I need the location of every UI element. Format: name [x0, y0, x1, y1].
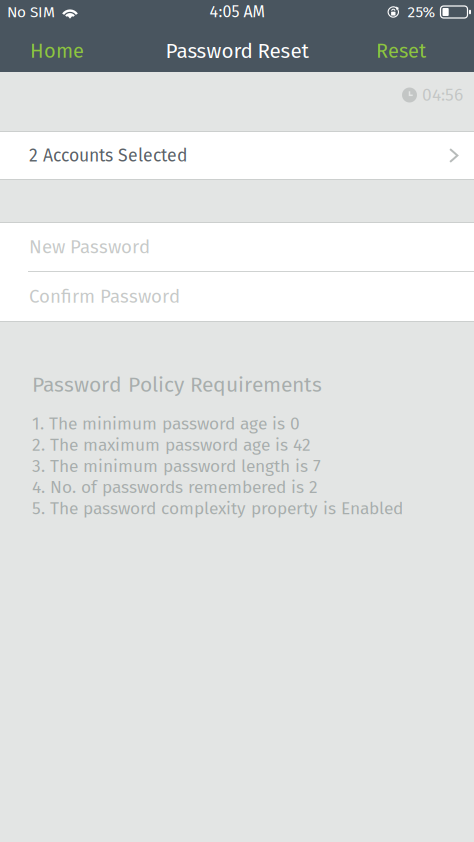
- staticText: Password Reset: [165, 39, 308, 63]
- staticText: Reset: [376, 39, 426, 63]
- staticText: 5. The password complexity property is E…: [32, 498, 403, 519]
- staticText: Confirm Password: [29, 285, 180, 308]
- staticText: New Password: [29, 236, 150, 258]
- button[interactable]: 2 Accounts Selected: [0, 132, 474, 179]
- button[interactable]: Reset: [369, 30, 433, 72]
- staticText: 4. No. of passwords remembered is 2: [32, 477, 318, 498]
- button[interactable]: Home: [23, 30, 91, 72]
- staticText: Home: [30, 39, 84, 63]
- staticText: 3. The minimum password length is 7: [32, 456, 321, 476]
- staticText: 2 Accounts Selected: [29, 145, 188, 166]
- staticText: Password Policy Requirements: [32, 372, 322, 397]
- staticText: 25%: [407, 3, 435, 21]
- staticText: 1. The minimum password age is 0: [32, 413, 300, 434]
- staticText: 2. The maximum password age is 42: [32, 434, 311, 455]
- staticText: No SIM: [7, 3, 55, 21]
- staticText: 4:05 AM: [209, 2, 264, 22]
- button[interactable]: New Password: [0, 223, 474, 271]
- button[interactable]: Confirm Password: [0, 272, 474, 321]
- staticText: 04:56: [422, 85, 463, 105]
